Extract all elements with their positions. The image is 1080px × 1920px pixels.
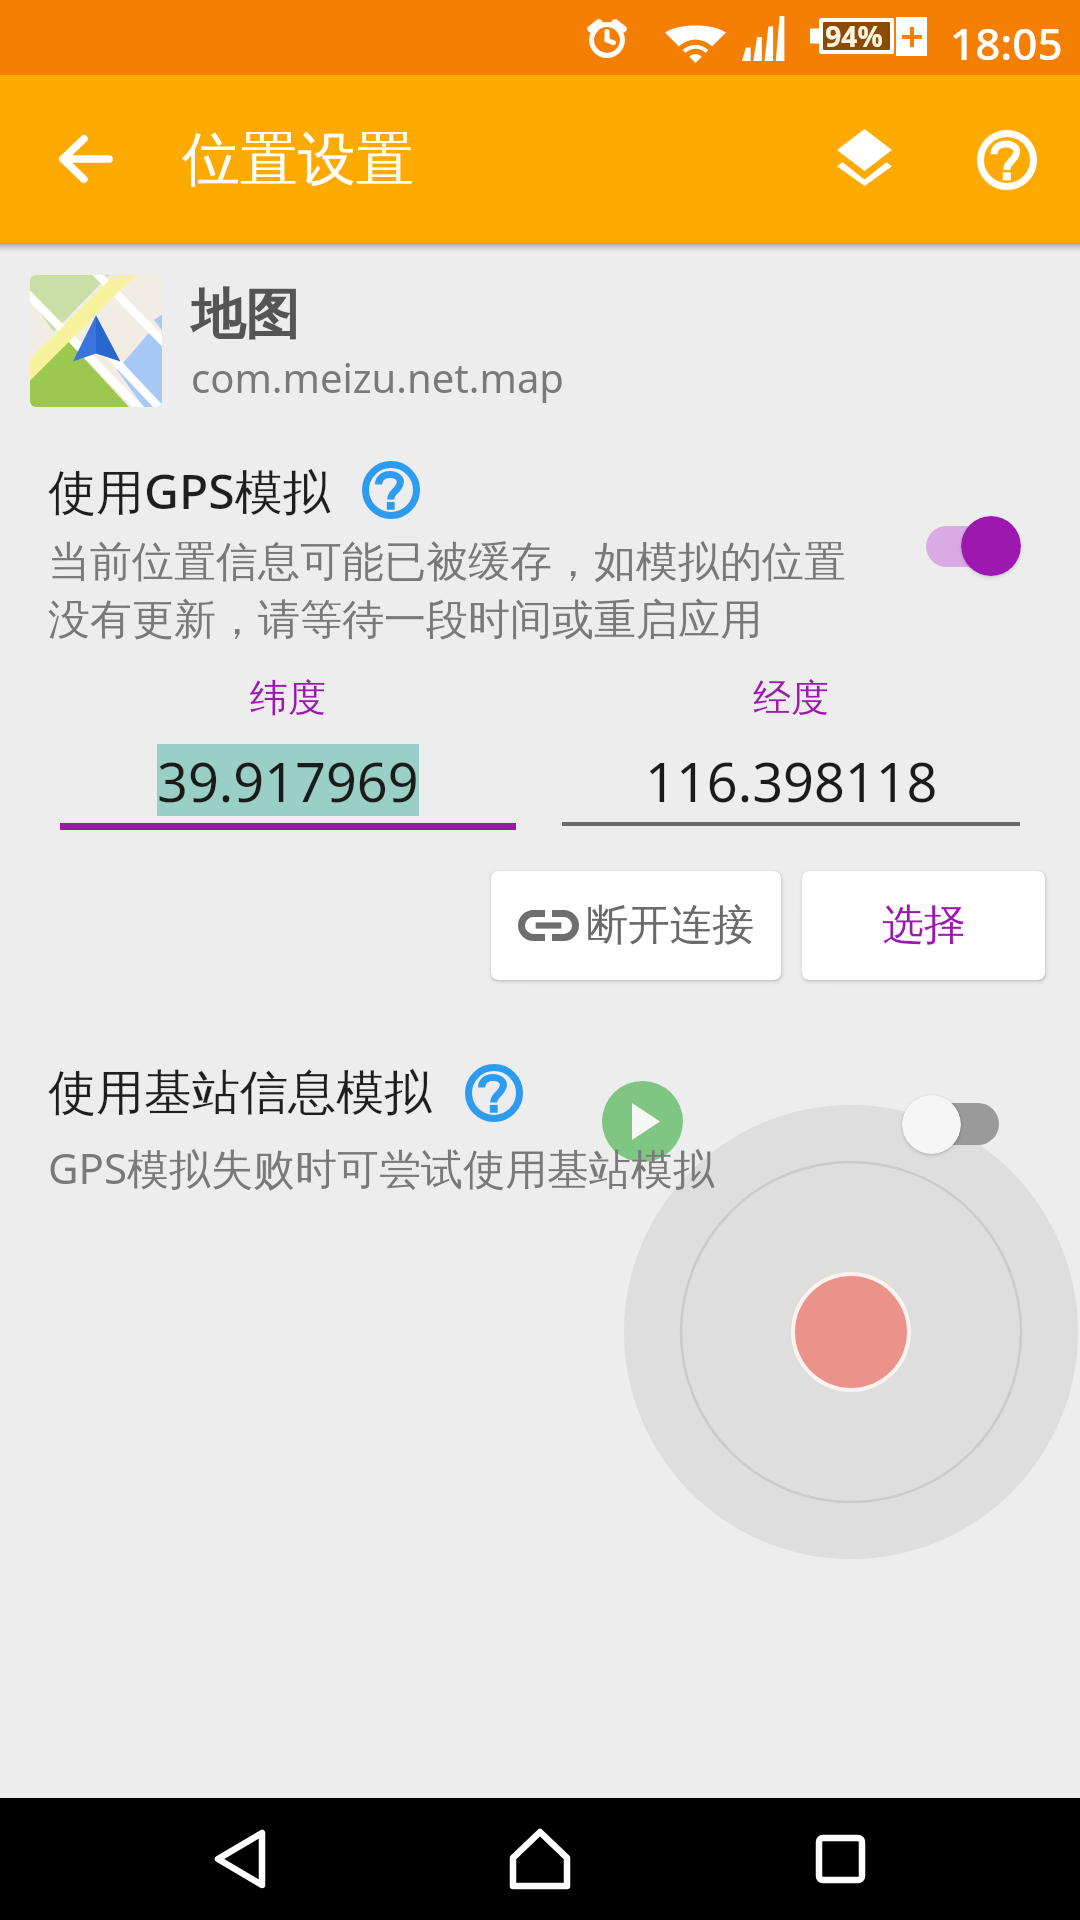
button[interactable]: Recent apps (775, 1804, 905, 1914)
button[interactable]: Toggle cell tower simulation (902, 1092, 999, 1156)
button[interactable]: Toggle GPS simulation (926, 515, 1021, 577)
staticText: com.meizu.net.map (191, 350, 564, 404)
button[interactable]: 39.917969 (88, 744, 488, 816)
staticText: 经度 (753, 674, 829, 722)
staticText: GPS模拟失败时可尝试使用基站模拟 (48, 1139, 716, 1196)
button[interactable]: Back (175, 1804, 305, 1914)
staticText: 使用GPS模拟 (48, 458, 331, 524)
staticText: 94% (810, 17, 898, 55)
staticText: 使用基站信息模拟 (48, 1063, 432, 1123)
button[interactable]: Help about GPS simulation (356, 455, 426, 525)
button[interactable]: 选择 (802, 871, 1045, 980)
button[interactable]: Help about cell tower simulation (459, 1058, 529, 1128)
staticText: 纬度 (250, 674, 326, 722)
button[interactable]: Back (36, 111, 132, 207)
button[interactable]: Map layers (814, 107, 914, 207)
button[interactable]: 116.398118 (591, 744, 991, 816)
staticText: 地图 (191, 281, 299, 349)
staticText: 当前位置信息可能已被缓存，如模拟的位置没有更新，请等待一段时间或重启应用 (48, 536, 854, 647)
button[interactable]: Help (957, 110, 1057, 210)
button[interactable]: 断开连接 (491, 871, 781, 980)
button[interactable]: Start simulation (602, 1081, 683, 1162)
staticText: 116.398118 (645, 744, 938, 816)
staticText: 位置设置 (182, 123, 414, 196)
button[interactable]: Home (475, 1804, 605, 1914)
staticText: 39.917969 (157, 744, 419, 816)
staticText: 选择 (882, 899, 966, 952)
staticText: 断开连接 (586, 899, 754, 952)
staticText: 18:05 (950, 13, 1063, 73)
